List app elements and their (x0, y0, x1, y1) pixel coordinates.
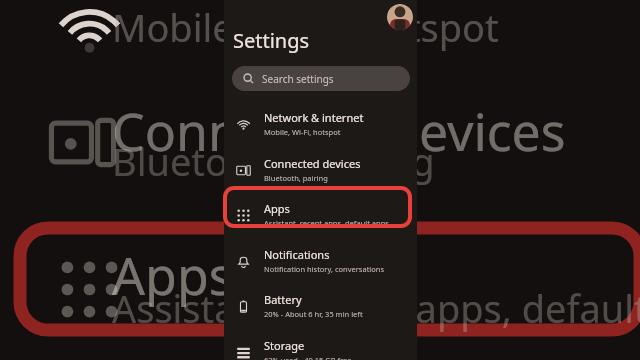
staticText: Search settings (262, 72, 334, 86)
button[interactable]: Notifications (224, 238, 417, 283)
staticText: Connected devices (112, 96, 566, 166)
button[interactable]: Battery (224, 283, 417, 328)
button[interactable]: Network & internet (224, 101, 417, 146)
button[interactable]: Connected devices (224, 147, 417, 192)
button[interactable]: Search settings (232, 66, 410, 91)
staticText: 20% - About 6 hr, 35 min left (264, 309, 363, 319)
staticText: Assistant, recent apps, default apps (112, 282, 640, 334)
staticText: Mobile, Wi-Fi, hotspot (264, 127, 341, 137)
staticText: Bluetooth, pairing (264, 173, 328, 183)
staticText: Battery (264, 292, 302, 307)
staticText: Apps (112, 240, 234, 310)
staticText: Assistant, recent apps, default apps (264, 218, 389, 228)
staticText: Notification history, conversations (264, 264, 385, 274)
button[interactable]: Account (387, 4, 413, 30)
staticText: Notifications (264, 247, 330, 262)
staticText: Mobile, Wi-Fi, hotspot (112, 1, 499, 53)
staticText: 62% used - 49.15 GB free (264, 355, 352, 360)
staticText: Bluetooth, pairing (112, 135, 435, 187)
button[interactable]: Storage (224, 329, 417, 360)
staticText: Settings (233, 27, 310, 54)
staticText: Storage (264, 338, 305, 353)
staticText: Network & internet (264, 110, 364, 125)
staticText: Connected devices (264, 156, 361, 171)
staticText: Apps (264, 201, 290, 216)
button[interactable]: Apps (224, 192, 417, 237)
